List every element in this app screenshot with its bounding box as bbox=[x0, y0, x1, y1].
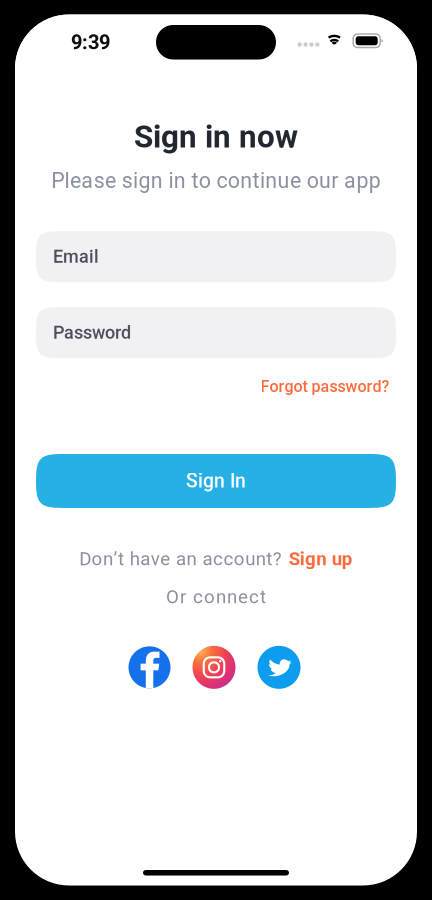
staticText: Sign In bbox=[186, 470, 246, 492]
staticText: Sign up bbox=[289, 548, 353, 570]
staticText: Sign in now bbox=[134, 118, 298, 155]
staticText: Password bbox=[53, 322, 131, 343]
staticText: Email bbox=[53, 246, 99, 267]
staticText: 9:39 bbox=[71, 31, 110, 54]
staticText: Please sign in to continue our app bbox=[51, 168, 381, 193]
button[interactable]: Sign In bbox=[36, 454, 396, 508]
button[interactable]: Sign up bbox=[289, 548, 353, 570]
staticText: Or connect bbox=[166, 586, 266, 608]
staticText: Don’t have an account? bbox=[79, 548, 282, 570]
button[interactable]: Sign in with Instagram bbox=[192, 646, 235, 689]
button[interactable]: Sign in with Twitter bbox=[257, 646, 300, 689]
button[interactable]: Forgot password? bbox=[260, 374, 389, 399]
button[interactable]: Sign in with Facebook bbox=[128, 646, 170, 688]
staticText: Forgot password? bbox=[260, 377, 389, 396]
